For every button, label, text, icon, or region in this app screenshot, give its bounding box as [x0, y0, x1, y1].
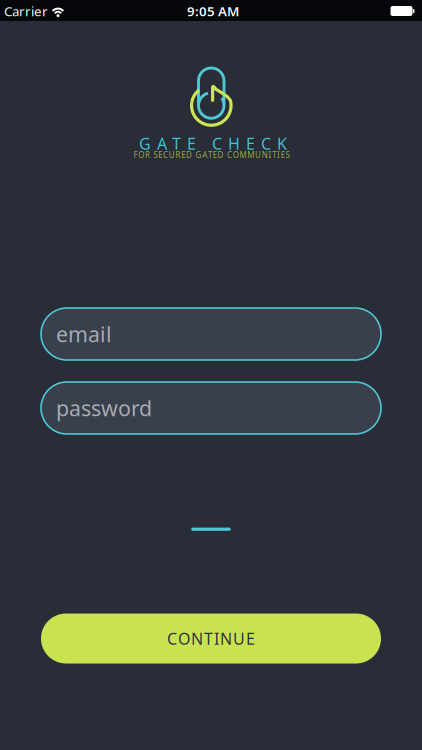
staticText: 9:05 AM	[187, 2, 239, 20]
staticText: GATE CHECK	[139, 133, 287, 154]
staticText: CONTINUE	[167, 628, 255, 649]
staticText: password	[56, 394, 152, 422]
staticText: email	[56, 320, 112, 348]
staticText: FOR SECURED GATED COMMUNITIES	[133, 150, 289, 160]
button[interactable]: email	[41, 308, 381, 360]
button[interactable]: CONTINUE	[41, 613, 381, 663]
staticText: Carrier	[4, 2, 48, 20]
button[interactable]: password	[41, 382, 381, 434]
